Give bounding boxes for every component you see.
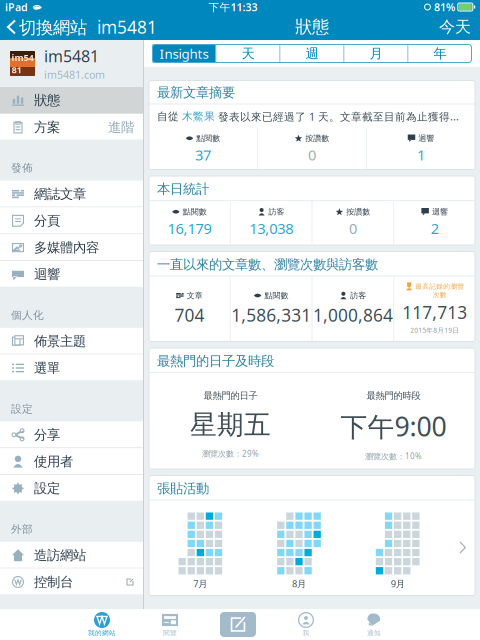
staticText: 年 <box>433 45 446 62</box>
staticText: 1,000,864 <box>313 303 393 326</box>
staticText: 本日統計 <box>157 181 209 197</box>
staticText: 下午9:00 <box>340 408 446 444</box>
staticText: 點閱數 <box>264 291 288 300</box>
staticText: im5481.com <box>44 67 105 82</box>
staticText: 13,038 <box>249 219 293 238</box>
button[interactable]: 方案 <box>0 114 144 141</box>
staticText: 0 <box>308 145 316 165</box>
staticText: 最高記錄的瀏覽 <box>415 282 464 291</box>
staticText: 我 <box>302 629 309 637</box>
staticText: 狀態 <box>34 92 60 109</box>
staticText: 發佈 <box>11 161 33 175</box>
button[interactable]: 今天 <box>430 14 480 40</box>
staticText: 按讚數 <box>305 133 329 143</box>
staticText: 網誌文章 <box>34 186 86 202</box>
staticText: 2 <box>431 219 439 238</box>
staticText: 一直以來的文章數、瀏覽次數與訪客數 <box>157 256 378 273</box>
staticText: iPad <box>5 0 28 14</box>
staticText: 迴響 <box>432 207 448 217</box>
button[interactable]: 通知 <box>340 609 408 640</box>
staticText: 按讚數 <box>346 207 370 217</box>
staticText: 週 <box>305 45 318 62</box>
staticText: 使用者 <box>34 453 73 470</box>
staticText: 設定 <box>11 402 33 415</box>
button[interactable]: New post <box>204 609 272 640</box>
staticText: 16,179 <box>167 219 211 238</box>
button[interactable]: 迴響 <box>0 261 144 288</box>
staticText: 天 <box>241 45 254 62</box>
staticText: 閱覽 <box>163 629 177 637</box>
button[interactable]: 設定 <box>0 475 144 502</box>
staticText: 自從 <box>157 110 182 123</box>
staticText: 2015年8月19日 <box>410 326 459 335</box>
staticText: 81% <box>434 0 455 14</box>
staticText: 次數 <box>433 291 447 299</box>
staticText: 多媒體內容 <box>34 239 99 256</box>
staticText: 1 <box>417 145 425 165</box>
staticText: 瀏覽次數：10% <box>365 451 422 461</box>
staticText: 個人化 <box>11 309 44 322</box>
staticText: Insights <box>159 45 208 62</box>
staticText: 分頁 <box>34 213 60 229</box>
button[interactable]: 佈景主題 <box>0 328 144 355</box>
staticText: 0 <box>349 219 357 238</box>
button[interactable]: 我的網站 <box>68 609 136 640</box>
staticText: 木鱉果 <box>182 110 215 123</box>
staticText: 下午11:33 <box>208 0 257 14</box>
staticText: 狀態 <box>295 16 329 38</box>
button[interactable]: 分享 <box>0 421 144 448</box>
staticText: 37 <box>195 145 211 165</box>
button[interactable]: 週 <box>280 44 343 62</box>
staticText: 點閱數 <box>196 133 220 143</box>
staticText: 瀏覽次數：29% <box>202 448 259 459</box>
button[interactable]: Next months <box>452 534 474 561</box>
staticText: 我的網站 <box>88 629 116 637</box>
staticText: 造訪網站 <box>34 547 86 563</box>
button[interactable]: 使用者 <box>0 448 144 475</box>
staticText: im5481 <box>11 51 33 76</box>
button[interactable]: 控制台 <box>0 569 144 595</box>
staticText: 外部 <box>11 523 33 536</box>
staticText: im5481 <box>44 45 99 66</box>
button[interactable]: im5481 <box>0 40 144 87</box>
staticText: 迴響 <box>418 133 434 143</box>
staticText: 1,586,331 <box>231 303 311 326</box>
staticText: 最熱門的日子 <box>203 390 257 401</box>
button[interactable]: 年 <box>408 44 471 62</box>
button[interactable]: 切換網站 im5481 <box>0 14 161 40</box>
staticText: 最熱門的日子及時段 <box>157 353 274 369</box>
staticText: 月 <box>369 45 382 62</box>
staticText: 點閱數 <box>183 207 207 217</box>
button[interactable]: 選單 <box>0 355 144 381</box>
button[interactable]: Insights <box>152 44 215 62</box>
staticText: 切換網站 im5481 <box>19 15 157 38</box>
staticText: 控制台 <box>34 574 73 590</box>
button[interactable]: 分頁 <box>0 207 144 234</box>
button[interactable]: 造訪網站 <box>0 542 144 569</box>
staticText: 張貼活動 <box>157 480 209 497</box>
staticText: 最新文章摘要 <box>157 84 235 101</box>
staticText: 進階 <box>108 119 134 135</box>
button[interactable]: 月 <box>344 44 407 62</box>
staticText: 最熱門的時段 <box>366 390 420 401</box>
staticText: 佈景主題 <box>34 333 86 349</box>
staticText: 迴響 <box>34 266 60 283</box>
staticText: 8月 <box>292 577 306 590</box>
staticText: 7月 <box>193 577 207 590</box>
button[interactable]: 天 <box>216 44 279 62</box>
staticText: 訪客 <box>350 291 366 300</box>
staticText: 訪客 <box>268 207 284 217</box>
staticText: 選單 <box>34 360 60 376</box>
button[interactable]: 閱覽 <box>136 609 204 640</box>
staticText: 發表以來已經過了 1 天。文章截至目前為止獲得的迴響如下… <box>215 109 467 124</box>
staticText: 704 <box>174 303 204 326</box>
button[interactable]: 多媒體內容 <box>0 234 144 261</box>
button[interactable]: 我 <box>272 609 340 640</box>
staticText: 文章 <box>187 291 203 300</box>
staticText: 設定 <box>34 480 60 497</box>
staticText: 今天 <box>439 17 471 37</box>
staticText: 117,713 <box>402 301 467 324</box>
button[interactable]: 狀態 <box>0 87 144 114</box>
button[interactable]: 網誌文章 <box>0 181 144 207</box>
staticText: 9月 <box>391 577 405 590</box>
